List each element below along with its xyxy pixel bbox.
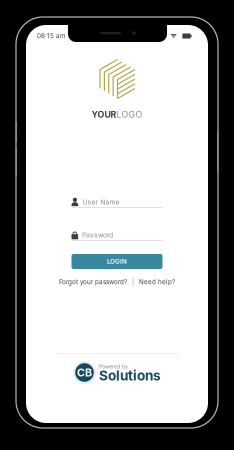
staticText: Powered by	[99, 363, 128, 370]
staticText: Forgot your password?	[59, 278, 127, 286]
staticText: |	[132, 278, 134, 286]
staticText: 08:15 am	[37, 32, 65, 40]
button[interactable]: Forgot your password?	[59, 278, 127, 286]
staticText: LOGO	[116, 109, 142, 120]
staticText: YOUR	[91, 109, 116, 120]
button[interactable]: Need help?	[139, 278, 175, 286]
staticText: LOGIN	[107, 258, 127, 265]
button[interactable]: LOGIN	[71, 254, 162, 269]
staticText: CB	[77, 366, 92, 379]
staticText: Password	[82, 231, 113, 239]
staticText: Need help?	[139, 278, 175, 286]
staticText: Solutions	[99, 367, 161, 384]
staticText: User Name	[82, 198, 119, 206]
